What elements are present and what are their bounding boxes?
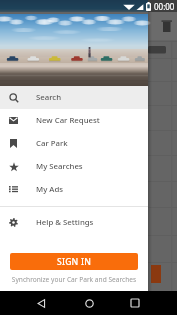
button[interactable]: My Ads [0,178,148,201]
button[interactable]: Home [77,291,101,315]
staticText: My Ads [36,184,64,195]
staticText: SIGN IN [57,256,92,268]
staticText: Help & Settings [36,217,94,228]
button[interactable]: Search [0,86,148,109]
button[interactable]: New Car Request [0,109,148,132]
button[interactable]: Car Park [0,132,148,155]
button[interactable]: My Searches [0,155,148,178]
button[interactable]: Help & Settings [0,211,148,234]
staticText: My Searches [36,161,83,172]
staticText: Car Park [36,138,68,149]
staticText: Synchronize your Car Park and Searches [0,275,148,284]
button[interactable]: SIGN IN [10,253,138,270]
staticText: New Car Request [36,115,100,126]
button[interactable]: Back [29,291,53,315]
staticText: 00:00 [154,1,175,12]
staticText: Search [36,92,62,103]
button[interactable]: Recents [123,291,147,315]
